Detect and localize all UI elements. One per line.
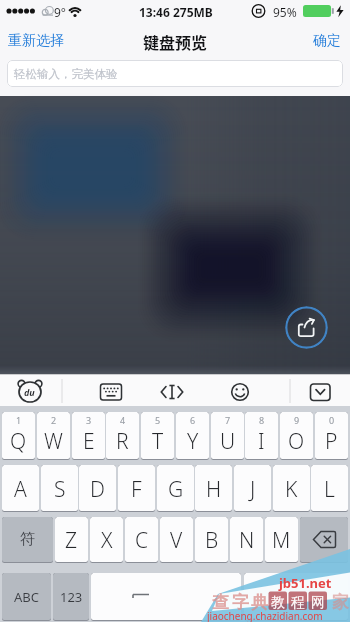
button[interactable]: 9	[280, 412, 313, 460]
button[interactable]	[244, 573, 348, 621]
staticText: G	[168, 475, 184, 504]
staticText: 13:46 275MB	[139, 4, 213, 20]
button[interactable]: ABC	[2, 573, 51, 621]
button[interactable]: C	[125, 517, 158, 563]
staticText: N	[239, 526, 255, 555]
button[interactable]: 1	[2, 412, 35, 460]
button[interactable]: 符	[2, 517, 53, 563]
staticText: T	[152, 427, 164, 456]
button[interactable]	[224, 376, 256, 404]
staticText: 6	[190, 414, 196, 426]
staticText: R	[116, 427, 129, 456]
staticText: 95%	[273, 4, 297, 20]
button[interactable]: H	[195, 465, 232, 512]
staticText: 符	[20, 530, 35, 549]
staticText: J	[250, 475, 256, 504]
staticText: P	[325, 427, 338, 456]
staticText: 3	[86, 414, 92, 426]
button[interactable]: 123	[53, 573, 89, 621]
button[interactable]	[14, 376, 48, 404]
staticText: E	[83, 427, 95, 456]
button[interactable]: 确定	[306, 28, 348, 54]
staticText: 键盘预览	[143, 30, 208, 53]
staticText: Y	[187, 427, 199, 456]
button[interactable]	[95, 376, 127, 404]
button[interactable]	[285, 306, 328, 349]
staticText: 4	[120, 414, 126, 426]
button[interactable]: N	[230, 517, 263, 563]
button[interactable]: M	[265, 517, 298, 563]
staticText: U	[220, 427, 236, 456]
button[interactable]: L	[311, 465, 348, 512]
button[interactable]: 6	[176, 412, 209, 460]
staticText: ABC	[14, 588, 39, 606]
button[interactable]	[304, 376, 336, 404]
button[interactable]: J	[234, 465, 271, 512]
staticText: B	[205, 526, 219, 555]
button[interactable]: B	[195, 517, 228, 563]
button[interactable]: S	[41, 465, 78, 512]
staticText: 0	[329, 414, 335, 426]
staticText: H	[206, 475, 222, 504]
staticText: O	[288, 427, 305, 456]
button[interactable]	[156, 376, 188, 404]
button[interactable]: 8	[245, 412, 278, 460]
button[interactable]: K	[273, 465, 310, 512]
button[interactable]: 4	[106, 412, 139, 460]
staticText: I	[258, 427, 265, 456]
button[interactable]: 5	[141, 412, 174, 460]
button[interactable]: 0	[315, 412, 348, 460]
staticText: jiaocheng.chazidian.com	[207, 609, 323, 622]
staticText: Z	[65, 526, 78, 555]
staticText: K	[285, 475, 298, 504]
staticText: 1	[16, 414, 22, 426]
staticText: M	[272, 526, 291, 555]
staticText: 典	[251, 592, 268, 613]
staticText: F	[131, 475, 142, 504]
staticText: Q	[10, 427, 27, 456]
staticText: 轻松输入，完美体验	[14, 67, 118, 81]
staticText: 7	[225, 414, 231, 426]
button[interactable]: A	[2, 465, 39, 512]
staticText: 字	[232, 592, 249, 613]
staticText: 家	[332, 592, 349, 613]
staticText: 123	[60, 588, 83, 606]
button[interactable]: G	[157, 465, 194, 512]
staticText: 2	[51, 414, 57, 426]
staticText: 程	[291, 594, 305, 612]
staticText: 网	[311, 594, 325, 612]
button[interactable]	[300, 517, 348, 563]
staticText: 教	[271, 594, 285, 612]
staticText: 查	[212, 592, 229, 613]
staticText: S	[54, 475, 66, 504]
staticText: 确定	[313, 32, 341, 50]
button[interactable]: 7	[211, 412, 244, 460]
button[interactable]: F	[118, 465, 155, 512]
button[interactable]: 2	[37, 412, 70, 460]
button[interactable]: X	[90, 517, 123, 563]
button[interactable]: 3	[72, 412, 105, 460]
staticText: 重新选择	[8, 32, 64, 50]
staticText: D	[90, 475, 105, 504]
staticText: jb51.net	[279, 574, 332, 592]
button[interactable]: V	[160, 517, 193, 563]
staticText: 9°	[54, 4, 67, 20]
staticText: X	[101, 526, 113, 555]
staticText: A	[14, 475, 27, 504]
button[interactable]: 重新选择	[2, 28, 80, 54]
staticText: 8	[259, 414, 265, 426]
button[interactable]	[91, 573, 241, 621]
staticText: 5	[155, 414, 161, 426]
staticText: du	[24, 386, 35, 398]
button[interactable]: 轻松输入，完美体验	[7, 60, 343, 87]
staticText: V	[170, 526, 183, 555]
button[interactable]: D	[79, 465, 116, 512]
button[interactable]: Z	[55, 517, 88, 563]
staticText: C	[135, 526, 149, 555]
staticText: W	[44, 427, 63, 456]
staticText: L	[324, 475, 335, 504]
staticText: 9	[294, 414, 300, 426]
